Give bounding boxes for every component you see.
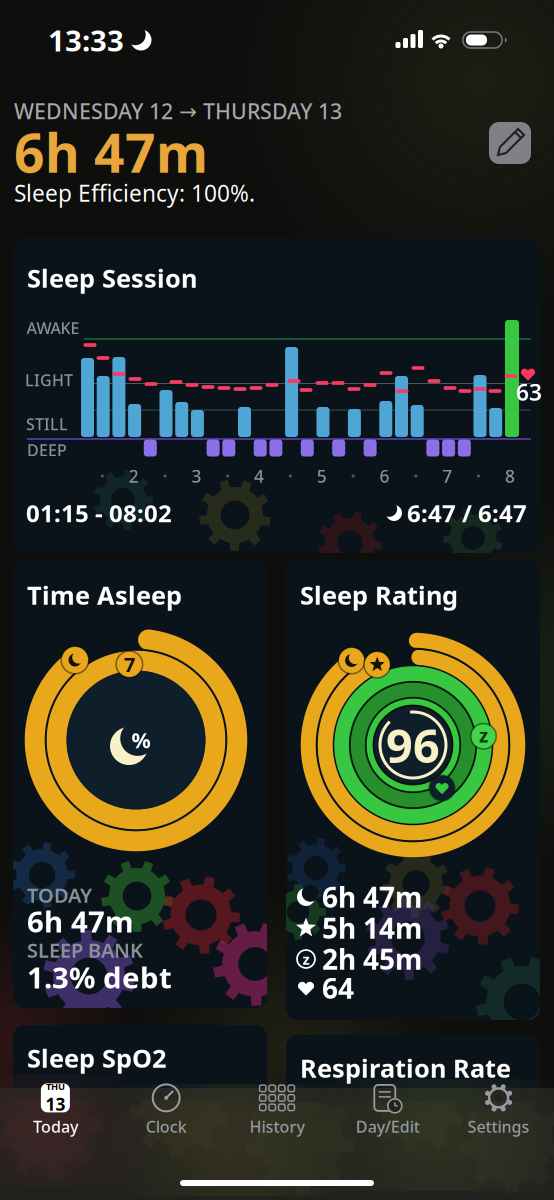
staticText: TODAY: [27, 882, 92, 908]
staticText: 1.3% debt: [27, 957, 172, 996]
staticText: AWAKE: [26, 317, 79, 339]
staticText: 2: [129, 464, 139, 487]
staticText: 6h 47m: [27, 901, 134, 940]
staticText: 01:15 - 08:02: [26, 497, 172, 529]
staticText: STILL: [26, 413, 68, 435]
staticText: Sleep Efficiency: 100%.: [14, 178, 255, 208]
staticText: %: [131, 726, 150, 754]
staticText: Sleep SpO2: [27, 1041, 166, 1075]
staticText: 7: [442, 464, 452, 487]
staticText: 6h 47m: [14, 117, 208, 187]
button[interactable]: THU: [5, 1081, 105, 1139]
staticText: SLEEP BANK: [27, 937, 143, 963]
staticText: THU: [46, 1080, 65, 1093]
staticText: Time Asleep: [27, 578, 182, 612]
staticText: DEEP: [27, 439, 67, 461]
button[interactable]: Time Asleep: [13, 560, 267, 1008]
button[interactable]: Sleep Session: [13, 238, 541, 553]
staticText: Sleep Session: [27, 261, 197, 295]
staticText: 13: [45, 1093, 65, 1116]
staticText: 5: [317, 464, 327, 487]
button[interactable]: Clock: [116, 1081, 216, 1139]
staticText: Day/Edit: [356, 1116, 420, 1137]
staticText: z: [479, 723, 488, 748]
staticText: 2h 45m: [322, 940, 422, 978]
button[interactable]: Respiration Rate: [286, 1035, 540, 1102]
staticText: 5h 14m: [322, 909, 422, 947]
staticText: 7: [124, 651, 135, 678]
staticText: Respiration Rate: [300, 1051, 511, 1085]
staticText: 96: [386, 714, 440, 776]
staticText: 6:47 / 6:47: [407, 497, 527, 529]
staticText: LIGHT: [25, 369, 73, 391]
staticText: Sleep Rating: [300, 578, 458, 612]
staticText: 3: [191, 464, 201, 487]
staticText: 13:33: [48, 20, 124, 59]
staticText: Today: [33, 1116, 78, 1137]
staticText: z: [302, 949, 309, 969]
staticText: 6: [379, 464, 389, 487]
staticText: Clock: [146, 1116, 187, 1137]
button[interactable]: History: [227, 1081, 327, 1139]
staticText: 4: [254, 464, 264, 487]
staticText: 63: [516, 377, 542, 407]
button[interactable]: Settings: [449, 1081, 549, 1139]
staticText: Settings: [468, 1116, 530, 1137]
staticText: History: [249, 1116, 304, 1137]
staticText: 6h 47m: [322, 878, 422, 916]
button[interactable]: Sleep SpO2: [13, 1025, 267, 1100]
staticText: WEDNESDAY 12 → THURSDAY 13: [14, 97, 342, 125]
staticText: 64: [322, 969, 354, 1007]
button[interactable]: Sleep Rating: [286, 560, 540, 1020]
button[interactable]: Day/Edit: [338, 1081, 438, 1139]
button[interactable]: Edit: [489, 122, 531, 164]
staticText: 8: [505, 464, 515, 487]
